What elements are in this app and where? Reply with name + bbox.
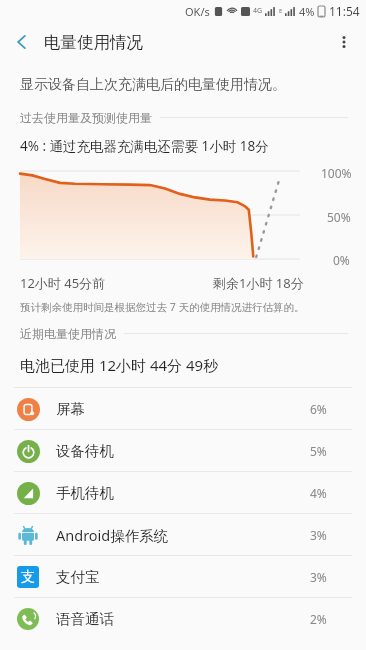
staticText: 过去使用量及预测使用量 (20, 110, 152, 125)
staticText: 支付宝 (56, 568, 100, 586)
button[interactable]: More options (322, 22, 366, 62)
staticText: 12小时 45分前 (20, 274, 106, 292)
staticText: 50% (327, 209, 351, 225)
staticText: 100% (321, 165, 352, 181)
staticText: 5% (310, 443, 340, 459)
staticText: 电池已使用 12小时 44分 49秒 (20, 355, 219, 375)
staticText: 4% : 通过充电器充满电还需要 1小时 18分 (20, 137, 269, 155)
staticText: 屏幕 (56, 400, 85, 418)
staticText: 4G (253, 6, 263, 16)
staticText: 近期电量使用情况 (20, 326, 116, 341)
staticText: OK/s (185, 4, 210, 19)
staticText: Android操作系统 (56, 525, 169, 545)
staticText: 剩余1小时 18分 (213, 274, 304, 292)
staticText: 11:54 (329, 3, 360, 19)
staticText: 2% (310, 611, 340, 627)
button[interactable]: 语音通话 (0, 598, 366, 639)
button[interactable]: 支 (0, 556, 366, 597)
button[interactable]: 屏幕 (0, 388, 366, 429)
staticText: 3% (310, 527, 340, 543)
staticText: 4% (310, 485, 340, 501)
staticText: 支 (21, 568, 35, 586)
staticText: 电量使用情况 (44, 32, 143, 53)
staticText: 语音通话 (56, 610, 114, 628)
staticText: 0% (333, 252, 350, 268)
staticText: 设备待机 (56, 442, 114, 460)
button[interactable]: 手机待机 (0, 472, 366, 513)
button[interactable]: Android操作系统 (0, 514, 366, 555)
button[interactable]: 设备待机 (0, 430, 366, 471)
button[interactable]: Back (0, 22, 44, 62)
staticText: 显示设备自上次充满电后的电量使用情况。 (20, 76, 286, 94)
staticText: 3% (310, 569, 340, 585)
staticText: 手机待机 (56, 484, 114, 502)
staticText: 4% (299, 4, 315, 19)
staticText: 预计剩余使用时间是根据您过去 7 天的使用情况进行估算的。 (20, 300, 305, 314)
staticText: E (279, 7, 283, 15)
staticText: 6% (310, 401, 340, 417)
